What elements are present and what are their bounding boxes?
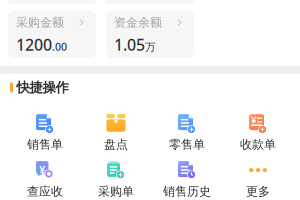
button[interactable]: 更多 bbox=[222, 161, 293, 199]
button[interactable]: 采购单 bbox=[80, 161, 151, 199]
staticText: .00 bbox=[52, 39, 67, 54]
staticText: 采购金额 bbox=[16, 15, 64, 30]
staticText: 零售单 bbox=[169, 137, 205, 152]
button[interactable]: 零售单 bbox=[151, 114, 222, 152]
staticText: 1200 bbox=[16, 34, 52, 55]
button[interactable]: 资金余额 bbox=[106, 11, 194, 58]
button[interactable]: 采购金额 bbox=[8, 11, 96, 58]
staticText: 盘点 bbox=[104, 137, 128, 152]
button[interactable]: 销售历史 bbox=[151, 161, 222, 199]
button[interactable]: ¥ bbox=[9, 161, 80, 199]
staticText: 销售单 bbox=[27, 137, 63, 152]
staticText: 收款单 bbox=[240, 137, 276, 152]
button[interactable]: 盘点 bbox=[80, 114, 151, 152]
staticText: 万 bbox=[145, 41, 156, 54]
staticText: 查应收 bbox=[27, 184, 63, 199]
staticText: 更多 bbox=[246, 184, 270, 199]
staticText: 1.05 bbox=[114, 34, 145, 55]
staticText: ¥ bbox=[39, 163, 45, 177]
button[interactable]: 收款单 bbox=[222, 114, 293, 152]
staticText: 销售历史 bbox=[163, 184, 211, 199]
button[interactable]: 销售单 bbox=[9, 114, 80, 152]
staticText: 资金余额 bbox=[114, 15, 162, 30]
staticText: 采购单 bbox=[98, 184, 134, 199]
staticText: 快捷操作 bbox=[16, 79, 68, 96]
